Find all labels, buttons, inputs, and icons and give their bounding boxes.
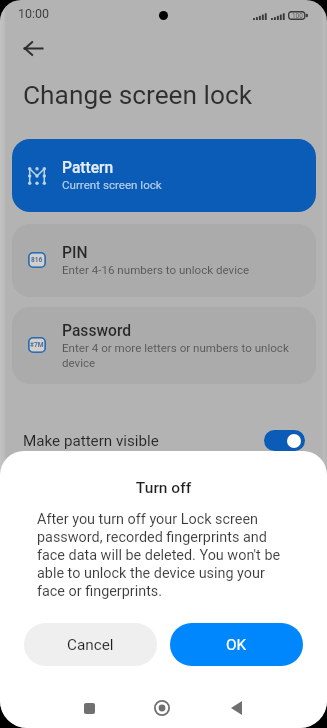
button[interactable]: Home xyxy=(145,691,179,725)
staticText: Turn off xyxy=(0,479,327,497)
button[interactable]: #7M xyxy=(12,307,316,384)
staticText: After you turn off your Lock screen pass… xyxy=(37,511,293,599)
button[interactable]: Back xyxy=(219,691,253,725)
staticText: 100 xyxy=(292,12,303,20)
staticText: #7M xyxy=(30,341,44,349)
staticText: Enter 4-16 numbers to unlock device xyxy=(62,263,250,277)
staticText: Current screen lock xyxy=(62,178,162,192)
staticText: OK xyxy=(226,636,247,654)
button[interactable]: Recents xyxy=(72,691,106,725)
staticText: 816 xyxy=(31,256,43,264)
staticText: Password xyxy=(62,322,132,340)
button[interactable]: Make pattern visible xyxy=(0,419,327,463)
staticText: Enter 4 or more letters or numbers to un… xyxy=(62,341,304,370)
staticText: Cancel xyxy=(67,636,114,654)
button[interactable]: Cancel xyxy=(24,623,157,666)
button[interactable]: Back xyxy=(14,29,52,67)
staticText: Pattern xyxy=(62,159,114,177)
button[interactable]: 816 xyxy=(12,224,316,297)
button[interactable]: Pattern xyxy=(12,139,316,212)
staticText: PIN xyxy=(62,244,88,262)
staticText: 10:00 xyxy=(18,6,50,21)
staticText: Make pattern visible xyxy=(23,432,264,450)
button[interactable]: OK xyxy=(170,623,303,666)
staticText: Change screen lock xyxy=(23,80,253,111)
